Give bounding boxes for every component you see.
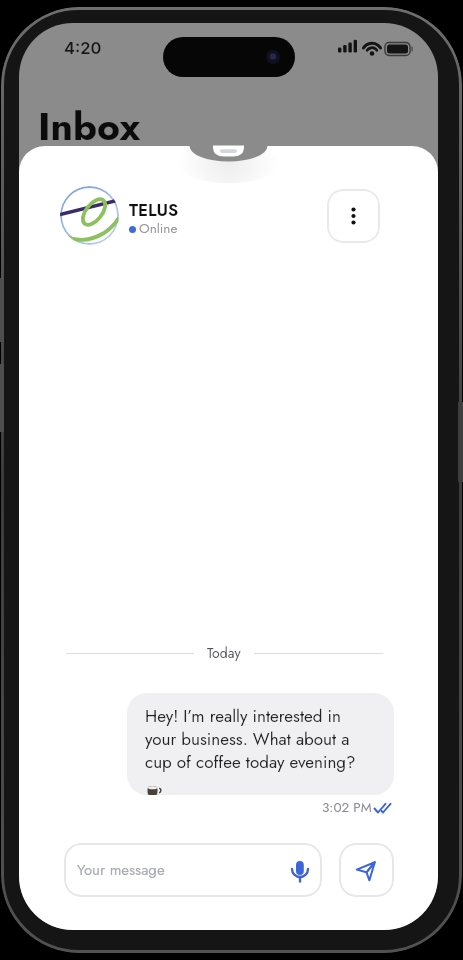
button[interactable]: Your message <box>64 843 322 897</box>
button[interactable] <box>283 852 317 890</box>
staticText: Online <box>139 219 178 239</box>
staticText: Your message <box>77 859 165 881</box>
button[interactable] <box>327 189 380 243</box>
staticText: Inbox <box>38 98 141 154</box>
staticText: Today <box>207 643 241 663</box>
staticText: 4:20 <box>64 38 102 58</box>
button[interactable] <box>339 843 394 897</box>
staticText: 3:02 PM <box>322 798 372 818</box>
button[interactable]: Hey! I’m really interested in your busin… <box>145 704 394 795</box>
staticText: TELUS <box>129 198 179 223</box>
staticText: Hey! I’m really interested in your busin… <box>145 704 356 774</box>
button[interactable] <box>60 186 119 245</box>
